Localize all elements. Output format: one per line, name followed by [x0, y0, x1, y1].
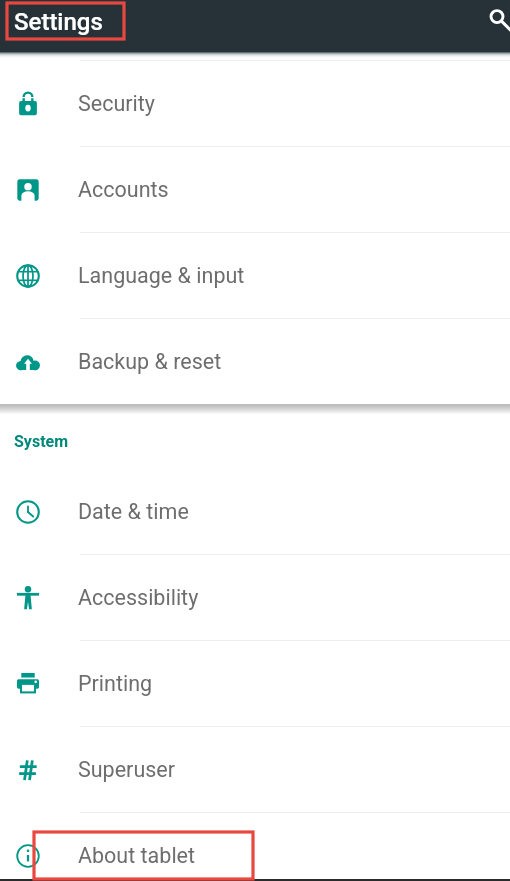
- staticText: Language & input: [78, 263, 245, 288]
- staticText: Superuser: [78, 757, 176, 782]
- button[interactable]: Accessibility: [0, 555, 510, 640]
- button[interactable]: Search: [473, 0, 510, 48]
- staticText: Date & time: [78, 499, 189, 524]
- staticText: System: [14, 432, 69, 451]
- staticText: Accounts: [78, 177, 169, 202]
- button[interactable]: Backup & reset: [0, 319, 510, 404]
- button[interactable]: Superuser: [0, 727, 510, 812]
- button[interactable]: Printing: [0, 641, 510, 726]
- staticText: Backup & reset: [78, 349, 222, 374]
- staticText: About tablet: [78, 843, 196, 868]
- button[interactable]: Security: [0, 61, 510, 146]
- staticText: Security: [78, 91, 155, 116]
- button[interactable]: Language & input: [0, 233, 510, 318]
- button[interactable]: Date & time: [0, 469, 510, 554]
- staticText: Settings: [14, 8, 103, 36]
- staticText: Accessibility: [78, 585, 199, 610]
- staticText: Printing: [78, 671, 153, 696]
- button[interactable]: Accounts: [0, 147, 510, 232]
- button[interactable]: About tablet: [0, 813, 510, 881]
